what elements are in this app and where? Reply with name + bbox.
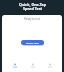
staticText: START TEST [26, 41, 39, 44]
button[interactable]: Settings [45, 62, 54, 68]
staticText: Quick, One-Tap Speed Test [19, 2, 46, 11]
button[interactable]: History [28, 62, 37, 68]
button[interactable]: START TEST [21, 40, 44, 45]
staticText: Ready to test [24, 17, 40, 21]
button[interactable]: Speed test [10, 62, 19, 68]
